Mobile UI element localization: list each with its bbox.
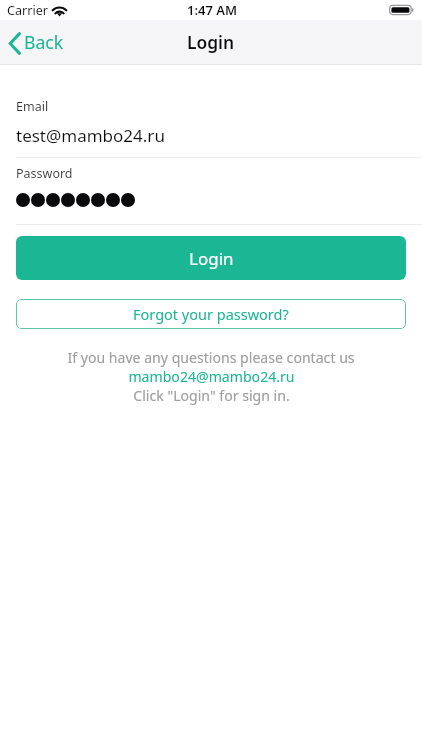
other: Battery — [389, 4, 413, 16]
staticText: test@mambo24.ru — [16, 124, 165, 147]
staticText: Password — [16, 165, 73, 182]
staticText: Back — [24, 30, 64, 54]
staticText: mambo24@mambo24.ru — [128, 367, 295, 386]
staticText: Click "Login" for sign in. — [133, 386, 290, 405]
button[interactable]: mambo24@mambo24.ru — [128, 367, 295, 386]
button[interactable]: Email — [0, 90, 422, 158]
staticText: Carrier — [7, 2, 48, 19]
staticText: Email — [16, 98, 49, 115]
button[interactable]: Back — [7, 20, 64, 64]
staticText: If you have any questions please contact… — [67, 348, 355, 367]
staticText: Login — [189, 247, 234, 270]
button[interactable]: Forgot your password? — [16, 299, 406, 329]
staticText: 1:47 AM — [187, 1, 238, 19]
staticText: Login — [187, 30, 235, 54]
button[interactable]: Login — [16, 236, 406, 280]
button[interactable]: Password — [0, 157, 422, 225]
other: Wi-Fi — [52, 3, 67, 19]
staticText: Forgot your password? — [133, 304, 289, 324]
